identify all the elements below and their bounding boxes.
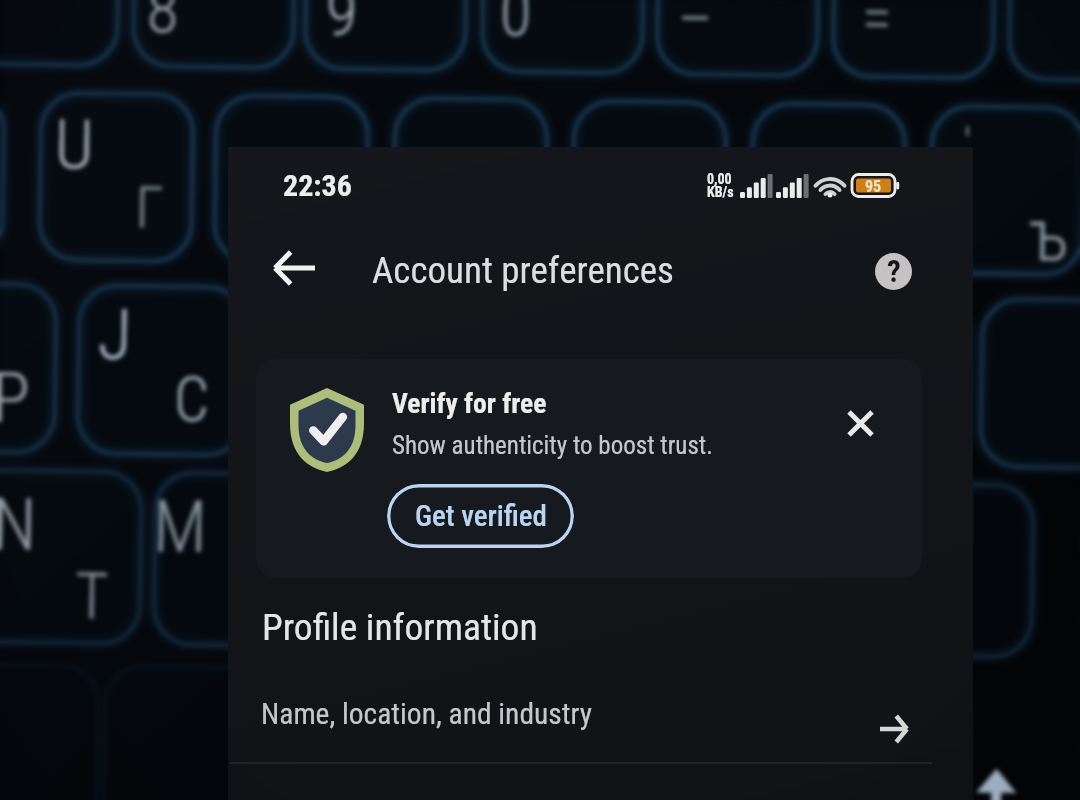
button[interactable]: Name, location, and industry xyxy=(228,675,973,753)
staticText: Verify for free xyxy=(392,387,547,419)
staticText: – xyxy=(677,0,714,55)
staticText: J xyxy=(97,293,132,376)
staticText: 22:36 xyxy=(283,168,352,203)
staticText: P xyxy=(0,357,31,439)
staticText: KB/s xyxy=(707,184,734,200)
staticText: Account preferences xyxy=(372,249,674,292)
staticText: M xyxy=(152,484,208,569)
staticText: ' xyxy=(963,118,972,170)
staticText: U xyxy=(54,105,94,185)
staticText: Г xyxy=(135,174,164,241)
staticText: Name, location, and industry xyxy=(261,697,593,732)
staticText: 0,00 xyxy=(707,171,732,187)
button[interactable]: Help xyxy=(869,247,917,295)
staticText: Profile information xyxy=(262,605,538,649)
button[interactable]: Get verified xyxy=(387,484,574,548)
staticText: 9 xyxy=(325,0,358,51)
button[interactable]: Close xyxy=(834,397,886,449)
staticText: 95 xyxy=(865,177,882,196)
staticText: = xyxy=(861,0,892,54)
staticText: T xyxy=(74,559,110,635)
staticText: Show authenticity to boost trust. xyxy=(392,431,713,460)
button[interactable]: Back xyxy=(266,240,322,296)
staticText: ъ xyxy=(1028,192,1069,279)
staticText: N xyxy=(0,482,38,567)
staticText: 0 xyxy=(499,0,532,52)
staticText: 8 xyxy=(146,0,179,49)
staticText: C xyxy=(173,363,210,436)
staticText: Get verified xyxy=(415,499,547,533)
staticText: ? xyxy=(887,253,901,289)
